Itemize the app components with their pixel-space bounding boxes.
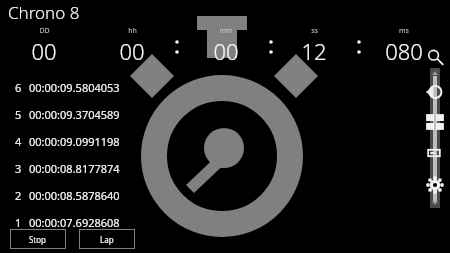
staticText: 00:00:09.0991198 — [29, 134, 120, 149]
staticText: 5 — [15, 107, 22, 122]
staticText: Stop — [29, 234, 47, 245]
staticText: 00:00:08.8177874 — [29, 161, 120, 176]
button[interactable]: 2 — [0, 182, 140, 209]
staticText: 00:00:09.5804053 — [29, 80, 120, 95]
staticText: Lap — [100, 234, 114, 245]
staticText: ms — [399, 26, 409, 36]
staticText: 00 — [31, 36, 57, 66]
staticText: 080 — [385, 36, 423, 66]
staticText: 12 — [301, 36, 327, 66]
staticText: ss — [311, 26, 318, 36]
button[interactable]: Lap — [79, 229, 135, 249]
button[interactable]: Save — [425, 143, 445, 163]
staticText: Chrono 8 — [8, 1, 80, 24]
staticText: 00:00:09.3704589 — [29, 107, 120, 122]
button[interactable]: Search — [426, 48, 444, 66]
staticText: 1 — [15, 215, 22, 230]
button[interactable]: 5 — [0, 101, 140, 128]
staticText: DD — [39, 26, 50, 36]
button[interactable]: 1 — [0, 209, 140, 236]
staticText: hh — [128, 26, 137, 36]
staticText: mm — [219, 26, 233, 36]
staticText: 6 — [15, 80, 22, 95]
button[interactable]: 3 — [0, 155, 140, 182]
button[interactable]: Location — [425, 82, 445, 102]
button[interactable]: 4 — [0, 128, 140, 155]
staticText: 2 — [15, 188, 22, 203]
button[interactable]: 6 — [0, 74, 140, 101]
staticText: 4 — [15, 134, 22, 149]
staticText: 00:00:08.5878640 — [29, 188, 120, 203]
staticText: 3 — [15, 161, 22, 176]
button[interactable]: Windows — [424, 111, 446, 133]
button[interactable]: Settings — [425, 175, 445, 195]
staticText: 00:00:07.6928608 — [29, 215, 120, 230]
staticText: 00 — [119, 36, 145, 66]
staticText: 00 — [213, 36, 239, 66]
button[interactable]: Stop — [10, 229, 66, 249]
